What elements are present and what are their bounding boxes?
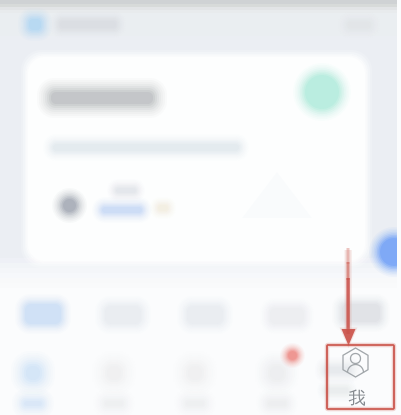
staticText: 我 (348, 387, 365, 409)
button[interactable]: Tab (0, 340, 73, 415)
button[interactable]: Tab (74, 340, 154, 415)
button[interactable]: Tab (155, 340, 235, 415)
button[interactable]: 我 (327, 345, 394, 409)
button[interactable]: Tab (237, 340, 317, 415)
